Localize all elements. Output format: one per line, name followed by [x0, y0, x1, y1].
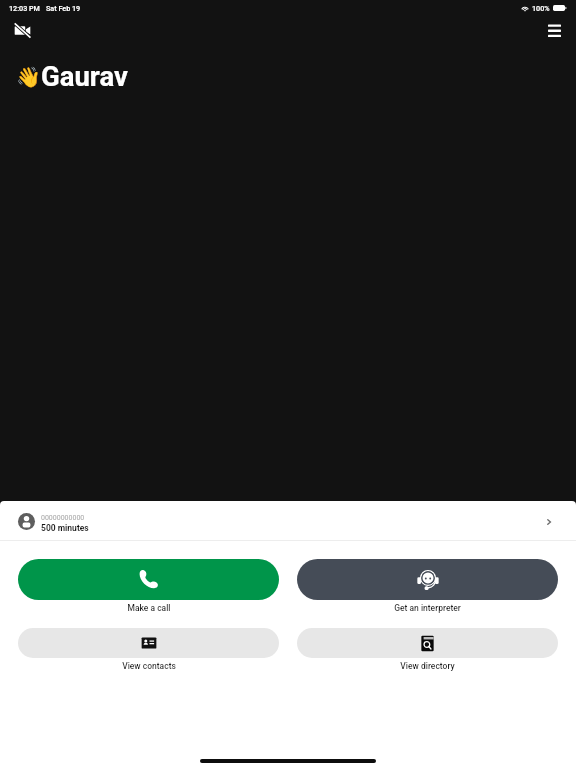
staticText: Get an interpreter [394, 603, 461, 613]
button[interactable]: View directory [297, 628, 558, 658]
staticText: Gaurav [41, 60, 128, 92]
staticText: 👋 [16, 65, 41, 88]
staticText: Sat Feb 19 [46, 4, 81, 12]
staticText: View directory [400, 661, 455, 671]
staticText: 00000000000 [41, 514, 85, 522]
button[interactable]: Turn video off [7, 15, 37, 45]
staticText: View contacts [122, 661, 176, 671]
staticText: 100% [532, 4, 550, 12]
button[interactable]: Get an interpreter [297, 559, 558, 600]
staticText: 12:03 PM [9, 4, 40, 12]
button[interactable]: Menu [539, 15, 569, 45]
staticText: 500 minutes [41, 523, 89, 533]
button[interactable]: View contacts [18, 628, 279, 658]
button[interactable]: 00000000000 [0, 501, 576, 540]
staticText: Make a call [127, 603, 171, 613]
button[interactable]: Make a call [18, 559, 279, 600]
